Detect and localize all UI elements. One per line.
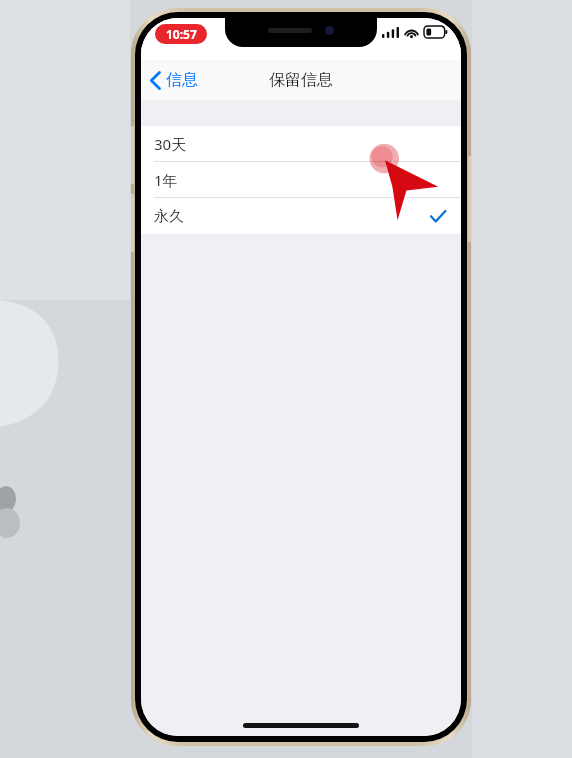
staticText: 永久 (154, 207, 184, 226)
staticText: 10:57 (166, 26, 197, 42)
button[interactable]: 1年 (141, 162, 461, 198)
staticText: 信息 (166, 70, 198, 90)
staticText: 1年 (154, 170, 178, 190)
staticText: 保留信息 (269, 70, 333, 90)
other: Selected (430, 210, 446, 223)
staticText: 30天 (154, 134, 187, 154)
button[interactable]: 永久 (141, 198, 461, 234)
button[interactable]: 信息 (141, 60, 208, 100)
button[interactable]: 30天 (141, 126, 461, 162)
